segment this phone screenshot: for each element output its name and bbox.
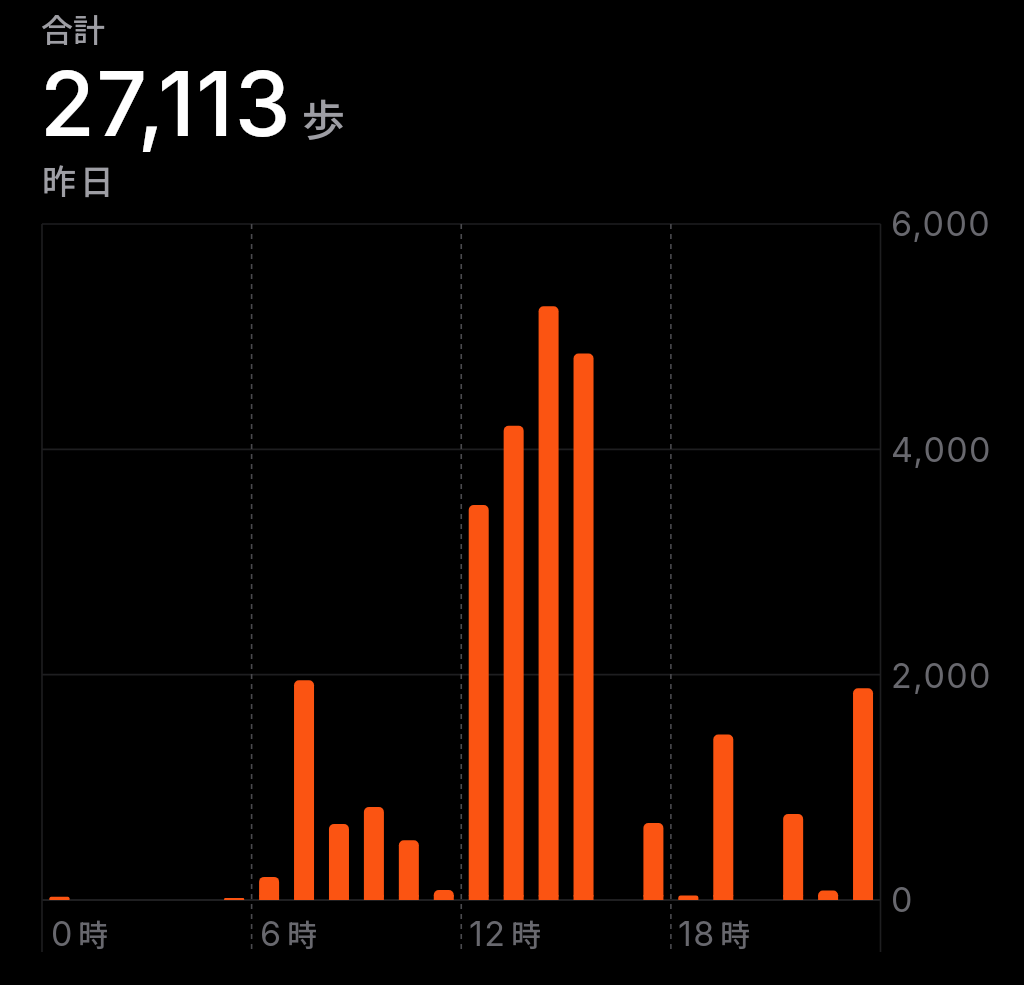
staticText: 時	[287, 911, 317, 954]
staticText: 6	[260, 913, 283, 954]
staticText: 0	[891, 879, 914, 920]
staticText: 27,113	[40, 50, 292, 158]
staticText: 18	[678, 913, 716, 954]
staticText: 合計	[41, 5, 106, 51]
staticText: 歩	[302, 86, 345, 148]
staticText: 0	[51, 913, 74, 954]
staticText: 2,000	[891, 655, 992, 696]
staticText: 時	[511, 911, 541, 954]
button[interactable]: Hourly step chart, 27,113 steps yesterda…	[0, 208, 1024, 985]
staticText: 時	[78, 911, 108, 954]
button[interactable]: 合計	[24, 0, 404, 205]
staticText: 昨日	[42, 155, 118, 204]
staticText: 6,000	[891, 203, 992, 244]
staticText: 12	[469, 913, 507, 954]
staticText: 4,000	[891, 429, 992, 470]
staticText: 時	[720, 911, 750, 954]
